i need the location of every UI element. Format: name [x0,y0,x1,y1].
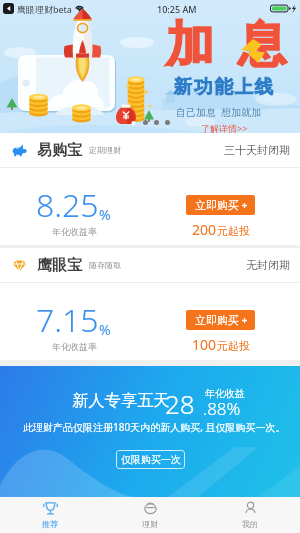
staticText: 了解详情>> [201,122,248,134]
staticText: 无封闭期 [246,258,290,272]
staticText: 年化收益 [205,387,245,400]
staticText: 理财 [142,519,158,529]
staticText: 仅限购买一次 [121,453,181,466]
staticText: 随存随取 [89,260,121,270]
staticText: 新人专享五天 [72,390,170,411]
button[interactable]: 立即购买 [186,195,255,215]
staticText: 8.25 [36,183,99,227]
button[interactable]: Back [3,3,14,14]
button[interactable]: 了解详情>> [201,122,248,134]
staticText: 元起投 [217,224,250,238]
staticText: 立即购买 [195,198,239,212]
button[interactable]: 推荐 [0,497,100,533]
staticText: 28 [165,386,195,421]
staticText: 100 [192,335,217,354]
staticText: 鹰眼理财beta [17,3,72,15]
staticText: 鹰眼宝 [37,256,82,275]
staticText: 年化收益率 [52,341,97,352]
staticText: % [99,205,111,224]
staticText: 加息 [154,15,298,75]
staticText: 定期理财 [89,145,121,155]
staticText: 立即购买 [195,313,239,327]
button[interactable]: 理财 [100,497,200,533]
staticText: .88% [203,397,241,420]
staticText: 7.15 [36,298,99,342]
staticText: 自己加息 想加就加 [176,105,262,119]
button[interactable]: 我的 [200,497,300,533]
staticText: 此理财产品仅限注册180天内的新人购买, 且仅限购买一次。 [23,420,286,434]
staticText: % [99,320,111,339]
staticText: 10:25 AM [157,3,197,15]
staticText: 三十天封闭期 [224,143,290,157]
button[interactable]: 立即购买 [186,310,255,330]
staticText: 易购宝 [37,141,82,160]
staticText: 新功能上线 [173,75,274,98]
staticText: 200 [192,220,217,239]
staticText: 年化收益率 [52,226,97,237]
staticText: 元起投 [217,339,250,353]
button[interactable]: 仅限购买一次 [116,450,185,469]
staticText: 推荐 [42,519,58,529]
staticText: 我的 [242,519,258,529]
